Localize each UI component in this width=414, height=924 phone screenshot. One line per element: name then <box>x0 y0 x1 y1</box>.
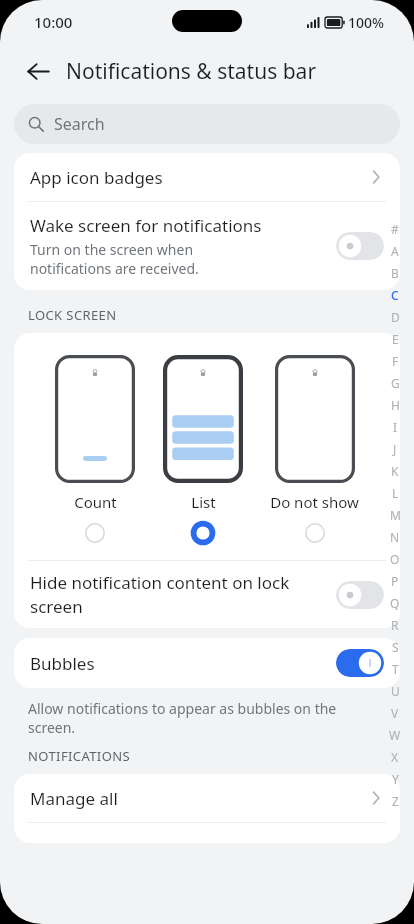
button[interactable]: Y <box>385 768 405 790</box>
button[interactable]: B <box>385 262 405 284</box>
staticText: Do not show <box>270 492 359 512</box>
button[interactable]: Back <box>16 49 60 93</box>
staticText: J <box>393 441 397 457</box>
staticText: 100% <box>348 13 384 32</box>
staticText: T <box>392 661 399 677</box>
button[interactable]: M <box>385 504 405 526</box>
button[interactable]: Z <box>385 790 405 812</box>
staticText: H <box>391 397 400 413</box>
button[interactable]: Toggle on <box>336 649 384 677</box>
staticText: 10:00 <box>34 12 73 32</box>
button[interactable]: W <box>385 724 405 746</box>
button[interactable]: H <box>385 394 405 416</box>
staticText: P <box>391 573 399 589</box>
staticText: K <box>391 463 399 479</box>
button[interactable]: E <box>385 328 405 350</box>
staticText: A <box>391 243 399 259</box>
staticText: G <box>391 375 400 391</box>
button[interactable]: Bubbles <box>14 638 400 688</box>
staticText: M <box>390 507 401 523</box>
staticText: Hide notification content on lock screen <box>30 571 336 618</box>
staticText: Q <box>390 595 400 611</box>
staticText: N <box>390 529 400 545</box>
button[interactable]: O <box>385 548 405 570</box>
staticText: O <box>390 551 400 567</box>
staticText: # <box>391 221 399 237</box>
staticText: List <box>191 492 216 512</box>
button[interactable]: # <box>385 218 405 240</box>
staticText: NOTIFICATIONS <box>28 747 131 765</box>
staticText: Notifications & status bar <box>66 57 317 86</box>
staticText: C <box>391 287 399 303</box>
button[interactable]: I <box>385 416 405 438</box>
button[interactable]: App icon badges <box>14 153 400 201</box>
button[interactable]: F <box>385 350 405 372</box>
staticText: Turn on the screen when notifications ar… <box>30 240 199 278</box>
button[interactable]: K <box>385 460 405 482</box>
button[interactable]: S <box>385 636 405 658</box>
staticText: R <box>391 617 399 633</box>
button[interactable]: Toggle off <box>336 232 384 260</box>
staticText: LOCK SCREEN <box>28 306 117 324</box>
staticText: Count <box>74 492 117 512</box>
button[interactable]: N <box>385 526 405 548</box>
button[interactable]: U <box>385 680 405 702</box>
staticText: Wake screen for notifications <box>30 214 262 237</box>
button[interactable]: Hide notification content on lock screen <box>14 561 400 628</box>
button[interactable]: P <box>385 570 405 592</box>
button[interactable]: R <box>385 614 405 636</box>
staticText: S <box>392 639 399 655</box>
staticText: U <box>391 683 400 699</box>
button[interactable]: Do not show <box>270 355 359 544</box>
staticText: W <box>389 727 401 743</box>
button[interactable]: V <box>385 702 405 724</box>
staticText: E <box>392 331 399 347</box>
button[interactable]: T <box>385 658 405 680</box>
staticText: F <box>392 353 399 369</box>
button[interactable]: A <box>385 240 405 262</box>
staticText: L <box>392 485 399 501</box>
staticText: V <box>391 705 399 721</box>
button[interactable]: C <box>385 284 405 306</box>
button[interactable]: Q <box>385 592 405 614</box>
staticText: X <box>391 749 399 765</box>
button[interactable]: G <box>385 372 405 394</box>
staticText: I <box>393 419 398 435</box>
staticText: Z <box>392 793 399 809</box>
button[interactable]: Count <box>55 355 135 544</box>
staticText: Manage all <box>30 787 368 810</box>
staticText: D <box>391 309 400 325</box>
button[interactable]: Search <box>14 104 400 144</box>
button[interactable]: D <box>385 306 405 328</box>
staticText: Allow notifications to appear as bubbles… <box>28 699 337 737</box>
staticText: Y <box>392 771 399 787</box>
button[interactable]: L <box>385 482 405 504</box>
button[interactable]: J <box>385 438 405 460</box>
staticText: B <box>391 265 399 281</box>
button[interactable]: X <box>385 746 405 768</box>
button[interactable]: List <box>163 355 243 544</box>
button[interactable]: Manage all <box>14 774 400 822</box>
button[interactable]: Toggle off <box>336 581 384 609</box>
staticText: Search <box>54 113 105 135</box>
staticText: Bubbles <box>30 652 336 675</box>
button[interactable]: Wake screen for notifications <box>14 202 400 290</box>
staticText: App icon badges <box>30 166 368 189</box>
